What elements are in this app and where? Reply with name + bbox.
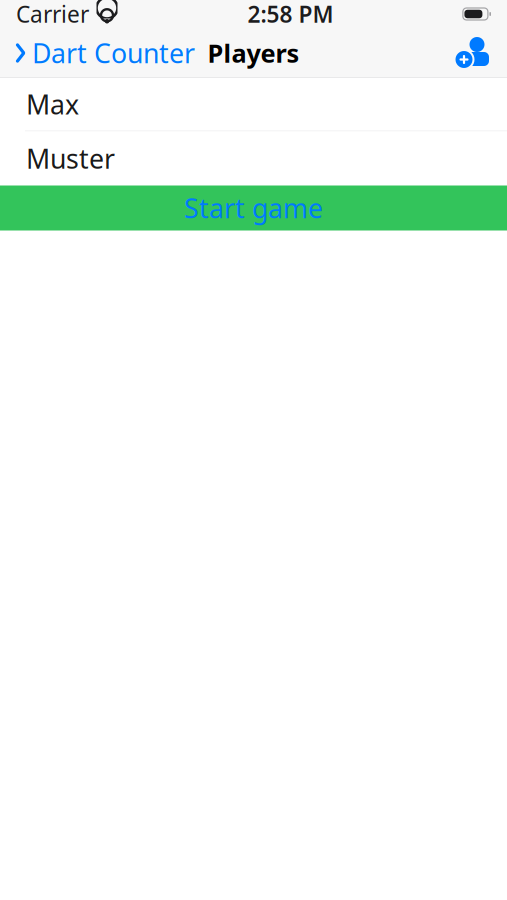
button[interactable]: Muster (0, 131, 507, 185)
staticText: Dart Counter (32, 35, 195, 71)
staticText: Max (26, 86, 79, 122)
staticText: Carrier (16, 0, 89, 29)
staticText: Players (207, 36, 299, 70)
button[interactable]: Max (0, 78, 507, 131)
button[interactable]: Start game (0, 185, 507, 230)
button[interactable]: Add player (453, 28, 507, 78)
staticText: 2:58 PM (247, 0, 333, 29)
staticText: Muster (26, 141, 115, 176)
staticText: Start game (184, 190, 323, 226)
button[interactable]: Dart Counter (0, 28, 203, 78)
